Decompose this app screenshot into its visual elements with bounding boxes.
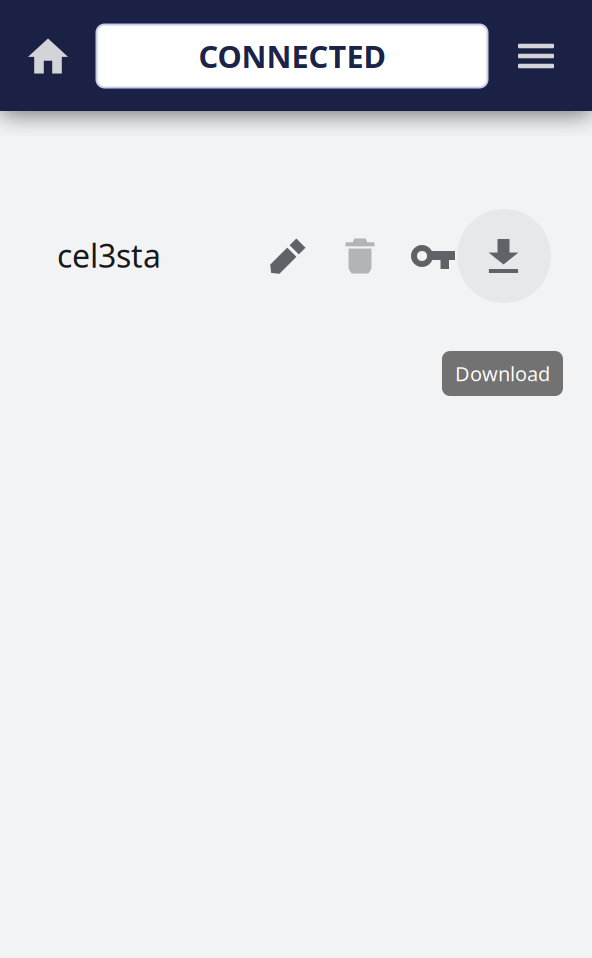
button[interactable]: Download	[457, 209, 551, 303]
staticText: cel3sta	[57, 234, 161, 276]
button[interactable]: Home	[20, 28, 76, 84]
staticText: Download	[455, 360, 550, 387]
staticText: CONNECTED	[198, 36, 385, 76]
button[interactable]: Edit	[262, 234, 310, 282]
button[interactable]: Delete	[336, 231, 384, 279]
button[interactable]: Menu	[508, 28, 564, 84]
button[interactable]: Key	[409, 232, 457, 280]
button[interactable]: CONNECTED	[96, 24, 487, 87]
